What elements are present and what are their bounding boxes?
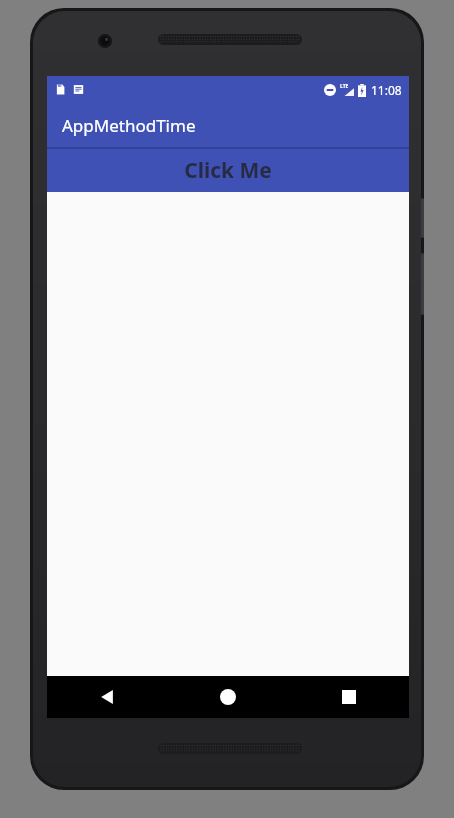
staticText: LTE: [340, 83, 349, 90]
staticText: Click Me: [184, 156, 272, 185]
button[interactable]: Back: [47, 676, 167, 718]
staticText: 11:08: [371, 82, 402, 98]
staticText: AppMethodTime: [62, 114, 196, 137]
button[interactable]: Recent apps: [288, 676, 409, 718]
button[interactable]: Click Me: [47, 147, 409, 192]
button[interactable]: Home: [167, 676, 288, 718]
